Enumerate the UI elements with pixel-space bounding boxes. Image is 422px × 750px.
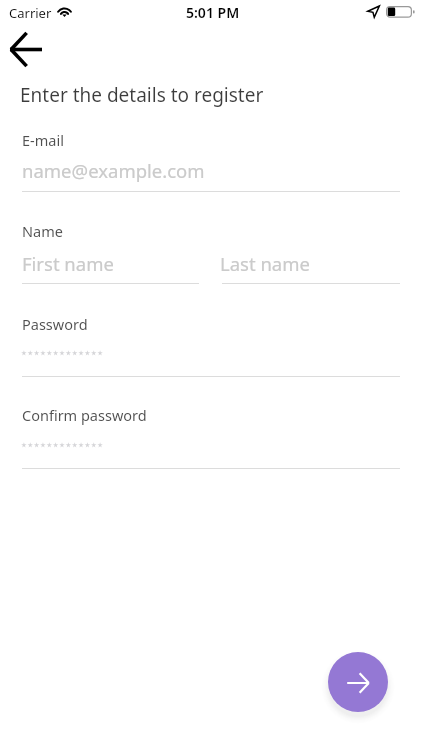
button[interactable] bbox=[22, 338, 400, 381]
button[interactable] bbox=[22, 430, 400, 473]
staticText: Last name bbox=[220, 251, 310, 276]
staticText: 5:01 PM bbox=[186, 3, 240, 22]
button[interactable]: Continue bbox=[328, 652, 388, 712]
staticText: Confirm password bbox=[22, 405, 147, 425]
staticText: name@example.com bbox=[22, 158, 205, 183]
staticText: Carrier bbox=[9, 4, 52, 22]
button[interactable]: Last name bbox=[222, 245, 400, 288]
staticText: Password bbox=[22, 314, 88, 334]
staticText: Name bbox=[22, 221, 63, 241]
button[interactable]: Back bbox=[0, 23, 52, 75]
button[interactable]: name@example.com bbox=[22, 152, 400, 196]
staticText: First name bbox=[22, 251, 114, 276]
staticText: E-mail bbox=[22, 130, 64, 150]
button[interactable]: First name bbox=[22, 245, 199, 288]
staticText: Enter the details to register bbox=[20, 82, 264, 108]
